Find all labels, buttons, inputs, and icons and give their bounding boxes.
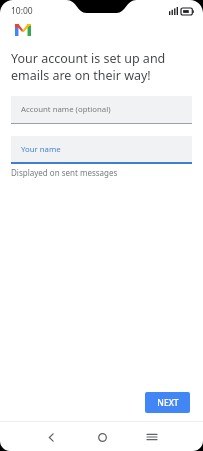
staticText: Displayed on sent messages — [11, 167, 118, 178]
button[interactable]: Back — [41, 427, 61, 447]
staticText: 10:00 — [11, 5, 33, 17]
staticText: Your name — [21, 144, 61, 155]
button[interactable]: Home — [92, 427, 112, 447]
staticText: Your account is set up and emails are on… — [11, 50, 166, 84]
staticText: NEXT — [157, 397, 179, 409]
button[interactable]: Recent apps — [142, 427, 162, 447]
button[interactable]: Account name (optional) — [11, 96, 192, 124]
button[interactable]: NEXT — [145, 392, 190, 413]
staticText: Account name (optional) — [21, 104, 111, 115]
button[interactable]: Your name — [11, 136, 192, 164]
